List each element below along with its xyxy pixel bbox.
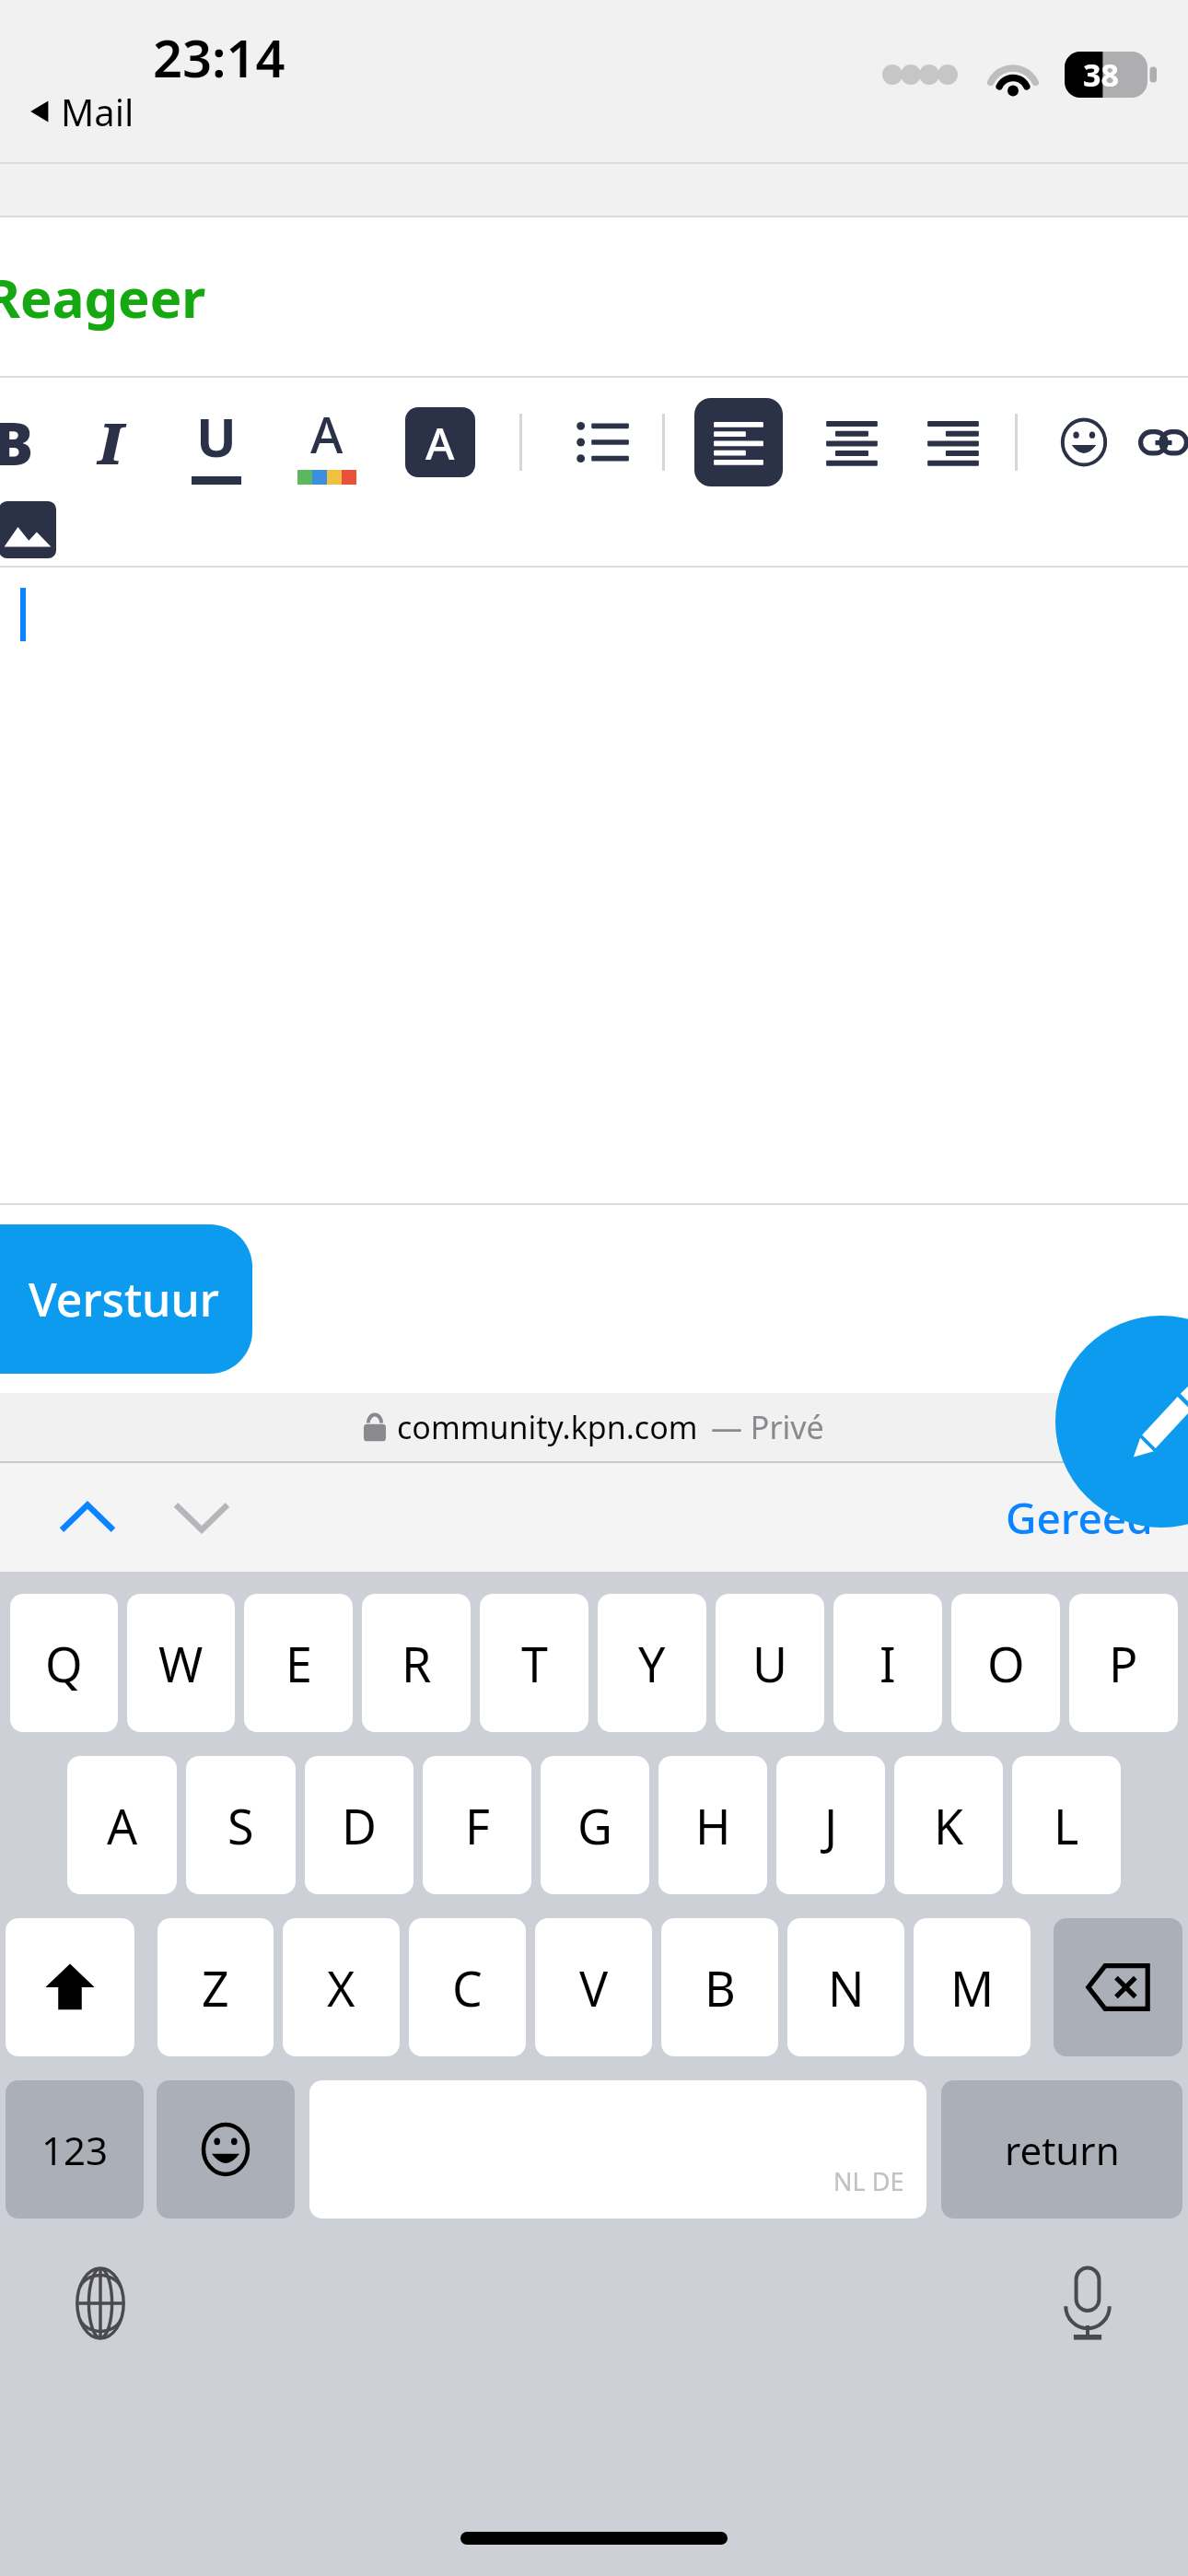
staticText: U (752, 1631, 788, 1696)
staticText: G (577, 1793, 612, 1858)
button[interactable]: Reageer (0, 261, 206, 334)
staticText: R (402, 1631, 432, 1696)
button[interactable]: Return (941, 2080, 1182, 2219)
staticText: S (227, 1793, 254, 1858)
staticText: J (824, 1793, 838, 1858)
button[interactable]: C (409, 1918, 526, 2056)
button[interactable]: Z (157, 1918, 274, 2056)
button[interactable]: Underline (162, 391, 271, 494)
button[interactable]: Q (10, 1594, 118, 1732)
button[interactable]: G (541, 1756, 649, 1894)
button[interactable]: Y (598, 1594, 706, 1732)
button[interactable] (0, 568, 1188, 1203)
staticText: Y (638, 1631, 666, 1696)
button[interactable]: Verstuur (0, 1224, 252, 1374)
button[interactable]: M (914, 1918, 1031, 2056)
button[interactable]: Align left (685, 391, 792, 494)
button[interactable]: New message (1055, 1316, 1188, 1528)
staticText: P (1109, 1631, 1138, 1696)
button[interactable]: Shift (6, 1918, 134, 2056)
staticText: B (705, 1955, 736, 2020)
staticText: I (98, 404, 122, 481)
staticText: A (425, 413, 455, 473)
staticText: O (987, 1631, 1025, 1696)
button[interactable]: Next field (158, 1474, 245, 1561)
staticText: Q (45, 1631, 83, 1696)
button[interactable]: Italic (57, 391, 162, 494)
staticText: N (828, 1955, 865, 2020)
staticText: F (465, 1793, 490, 1858)
button[interactable]: Insert link (1139, 391, 1188, 494)
button[interactable]: Highlight (383, 391, 497, 494)
button[interactable]: X (283, 1918, 400, 2056)
button[interactable]: community.kpn.com (364, 1406, 824, 1448)
button[interactable]: S (186, 1756, 296, 1894)
staticText: community.kpn.com (397, 1406, 698, 1448)
staticText: E (285, 1631, 312, 1696)
button[interactable]: T (480, 1594, 588, 1732)
button[interactable]: V (535, 1918, 652, 2056)
staticText: C (452, 1955, 483, 2020)
staticText: 123 (41, 2124, 109, 2176)
button[interactable]: Dictate (1042, 2258, 1133, 2348)
button[interactable]: P (1069, 1594, 1178, 1732)
button[interactable]: Bold (0, 391, 42, 494)
staticText: Z (202, 1955, 229, 2020)
button[interactable]: Backspace (1054, 1918, 1182, 2056)
staticText: L (1054, 1793, 1079, 1858)
staticText: Mail (61, 87, 134, 136)
button[interactable]: Gereed (1006, 1489, 1153, 1547)
staticText: B (0, 403, 34, 483)
button[interactable]: Mail (29, 87, 134, 136)
button[interactable]: Numbers (6, 2080, 144, 2219)
staticText: 38 (1083, 53, 1119, 96)
button[interactable]: H (658, 1756, 767, 1894)
staticText: T (521, 1631, 548, 1696)
staticText: M (950, 1955, 995, 2020)
staticText: H (695, 1793, 731, 1858)
button[interactable]: Insert image (0, 494, 68, 566)
button[interactable]: R (362, 1594, 471, 1732)
staticText: A (310, 400, 344, 468)
button[interactable]: L (1012, 1756, 1121, 1894)
button[interactable]: K (894, 1756, 1003, 1894)
button[interactable]: U (716, 1594, 824, 1732)
button[interactable]: Bulleted list (553, 391, 653, 494)
button[interactable]: B (661, 1918, 778, 2056)
button[interactable]: A (67, 1756, 177, 1894)
button[interactable]: D (305, 1756, 413, 1894)
staticText: I (879, 1631, 896, 1696)
button[interactable]: Text colour (271, 391, 383, 494)
staticText: K (934, 1793, 964, 1858)
staticText: V (579, 1955, 609, 2020)
button[interactable]: F (423, 1756, 531, 1894)
staticText: X (327, 1955, 355, 2020)
button[interactable]: W (127, 1594, 235, 1732)
button[interactable]: Change keyboard (55, 2258, 146, 2348)
staticText: A (107, 1793, 138, 1858)
button[interactable]: Emoji (1038, 391, 1130, 494)
staticText: 23:14 (153, 22, 285, 92)
staticText: Verstuur (29, 1268, 219, 1330)
button[interactable]: E (244, 1594, 353, 1732)
staticText: D (342, 1793, 377, 1858)
staticText: — Privé (711, 1406, 824, 1448)
staticText: W (158, 1631, 204, 1696)
staticText: return (1005, 2124, 1120, 2176)
button[interactable]: J (776, 1756, 885, 1894)
button[interactable]: Align center (803, 391, 901, 494)
button[interactable]: Previous field (44, 1474, 131, 1561)
button[interactable]: N (787, 1918, 904, 2056)
staticText: U (196, 400, 237, 473)
staticText: NL DE (833, 2164, 904, 2198)
button[interactable]: Align right (904, 391, 1002, 494)
button[interactable]: Space (309, 2080, 926, 2219)
button[interactable]: I (833, 1594, 942, 1732)
button[interactable]: Emoji (157, 2080, 295, 2219)
button[interactable]: O (951, 1594, 1060, 1732)
